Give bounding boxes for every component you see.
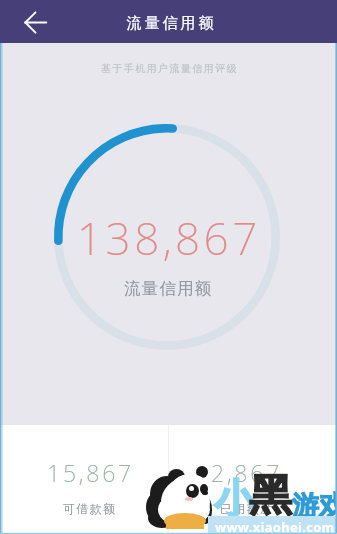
staticText: 138,867	[77, 208, 261, 268]
staticText: 2,867	[211, 457, 283, 488]
staticText: 小	[214, 474, 254, 524]
button[interactable]: 15,867	[12, 425, 168, 516]
staticText: 可借款额	[63, 501, 117, 516]
staticText: 15,867	[47, 457, 134, 488]
staticText: 黑	[249, 469, 292, 523]
staticText: 流量信用额	[124, 278, 213, 299]
button[interactable]: Back	[17, 4, 53, 40]
staticText: 游戏	[292, 489, 337, 523]
staticText: 流量信用额	[125, 14, 215, 33]
staticText: www.xiaohei.com	[215, 518, 335, 534]
staticText: 已用额度	[220, 501, 274, 516]
staticText: 基于手机用户流量信用评级	[1, 62, 337, 75]
button[interactable]: 2,867	[169, 425, 325, 516]
